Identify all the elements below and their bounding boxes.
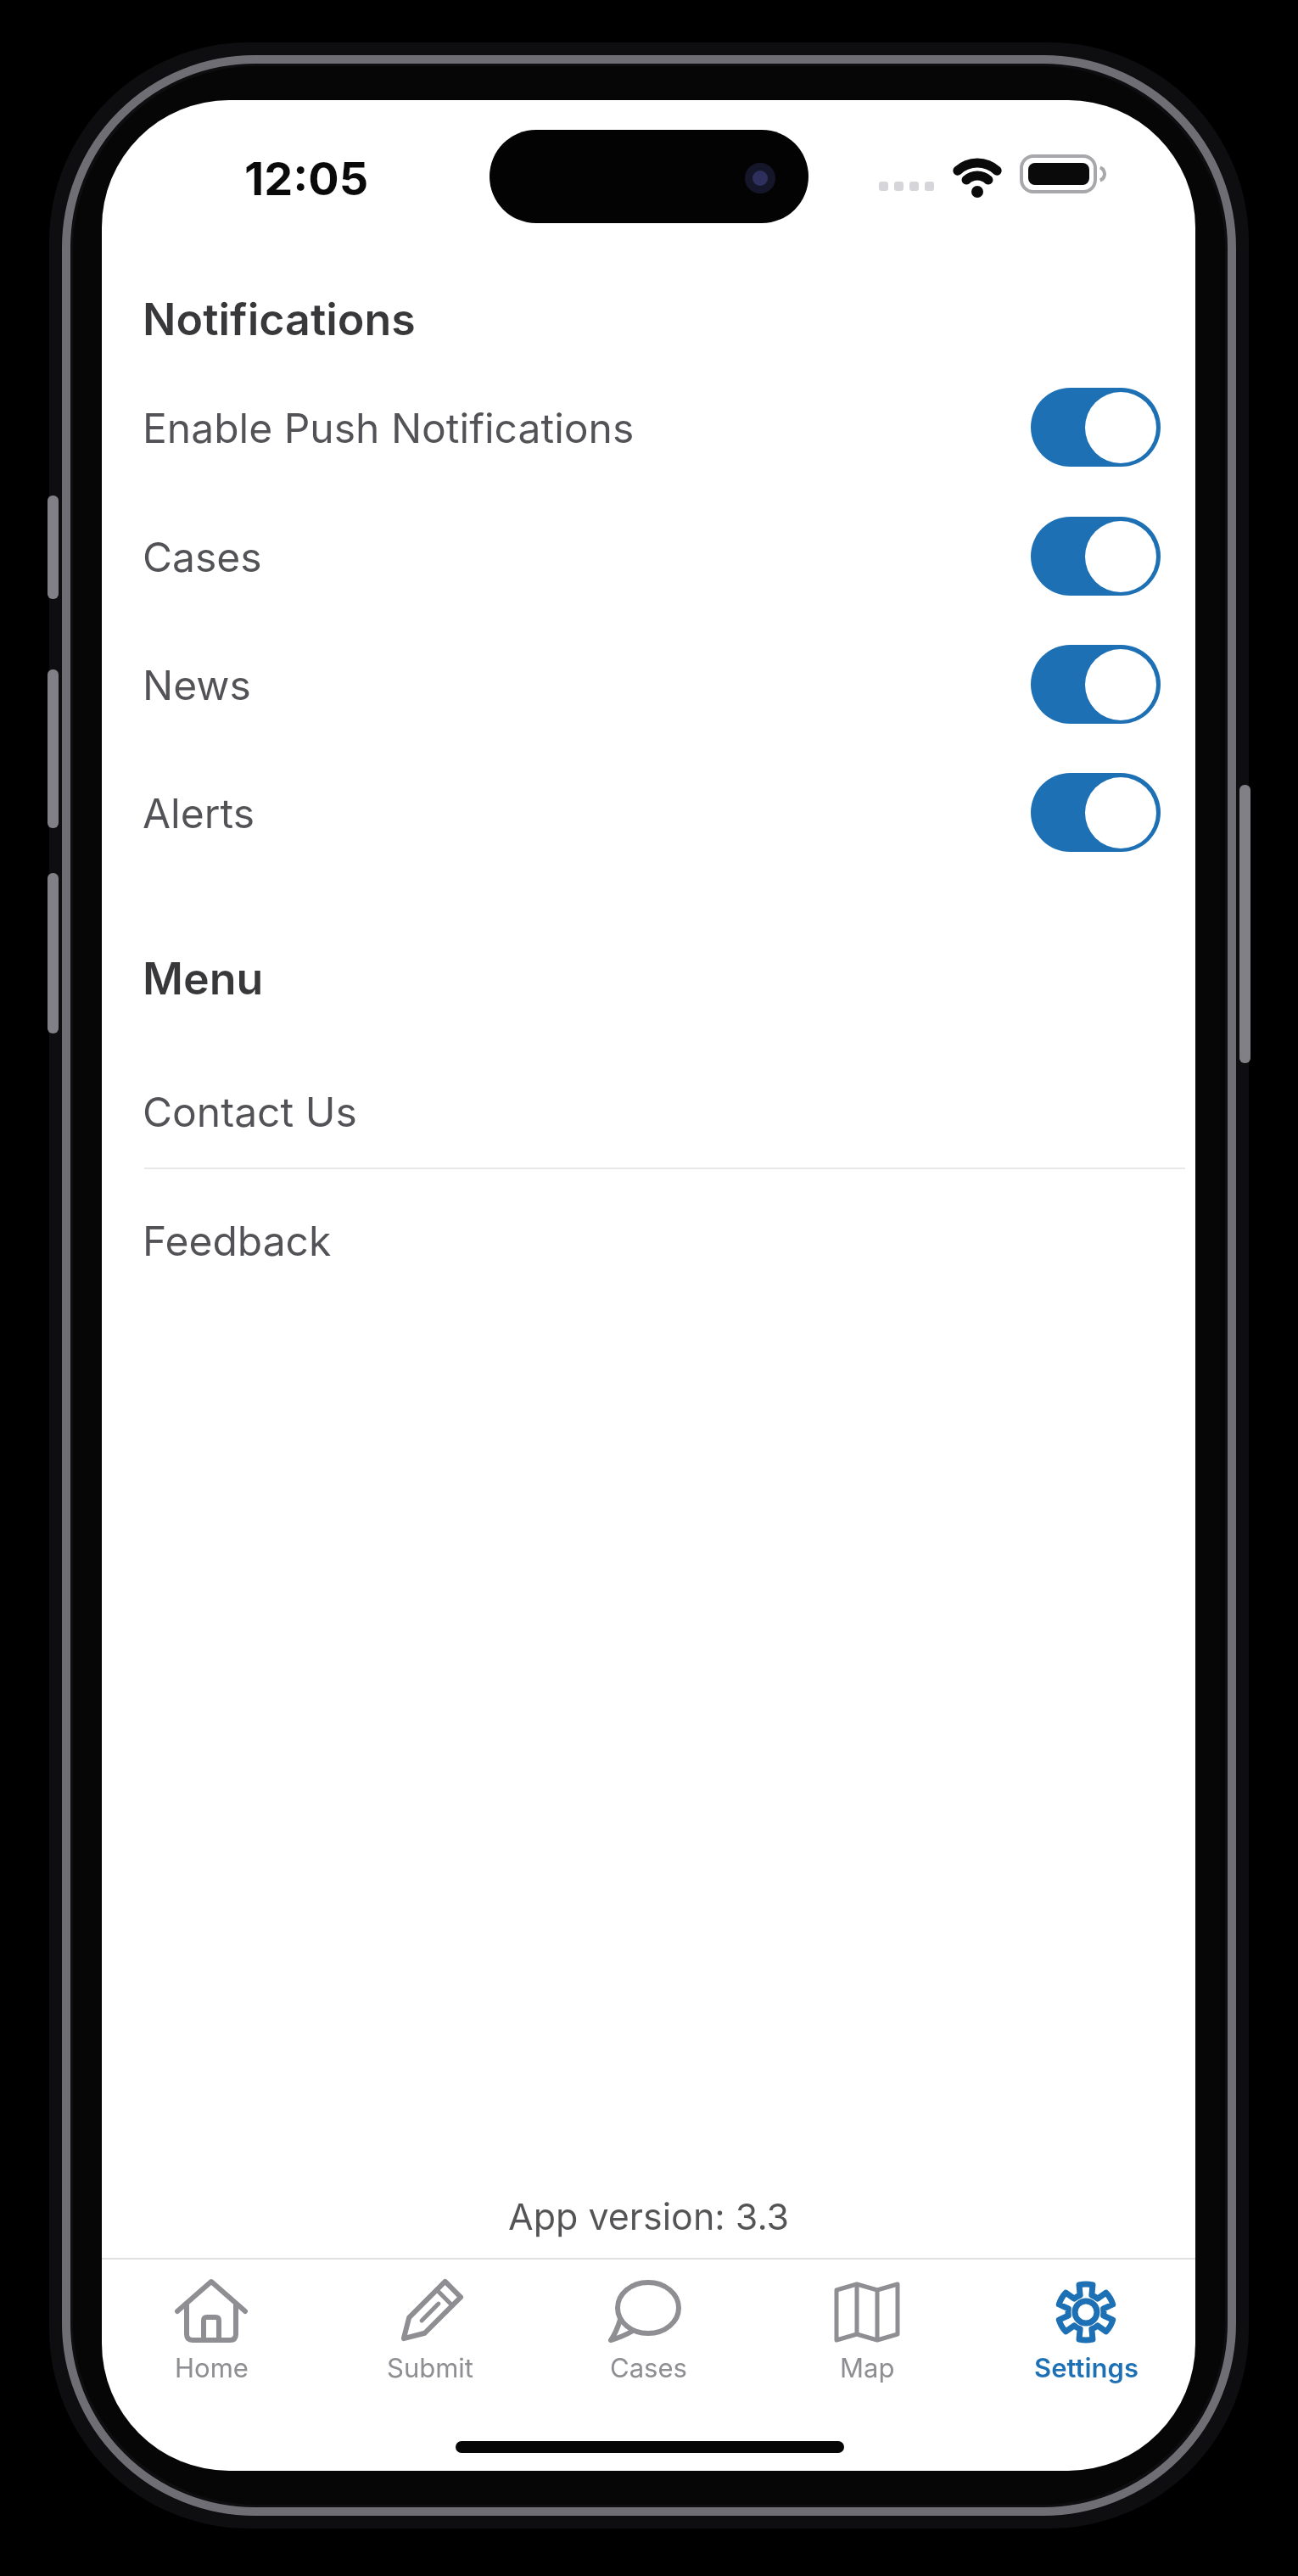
button[interactable]: Submit [328, 2262, 532, 2391]
button[interactable]: Settings [984, 2262, 1188, 2391]
button[interactable]: Cases [546, 2262, 750, 2391]
staticText: Menu [143, 952, 264, 1003]
staticText: Submit [387, 2352, 474, 2384]
staticText: 12:05 [244, 151, 369, 202]
staticText: Cases [610, 2352, 687, 2384]
button[interactable]: Map [765, 2262, 969, 2391]
staticText: Cases [143, 532, 262, 581]
staticText: News [143, 660, 251, 709]
staticText: App version: 3.3 [508, 2194, 790, 2238]
staticText: Contact Us [143, 1087, 357, 1136]
staticText: Enable Push Notifications [143, 403, 635, 452]
staticText: Feedback [143, 1216, 332, 1265]
button[interactable]: Feedback [143, 1215, 652, 1266]
staticText: Alerts [143, 788, 255, 837]
staticText: Notifications [143, 293, 416, 344]
button[interactable]: Contact Us [143, 1086, 652, 1137]
button[interactable] [1031, 388, 1161, 467]
button[interactable] [1031, 773, 1161, 852]
button[interactable] [1031, 517, 1161, 596]
staticText: Map [840, 2352, 895, 2384]
staticText: Settings [1034, 2352, 1139, 2384]
staticText: Home [175, 2352, 249, 2384]
button[interactable]: Home [109, 2262, 313, 2391]
button[interactable] [1031, 645, 1161, 724]
